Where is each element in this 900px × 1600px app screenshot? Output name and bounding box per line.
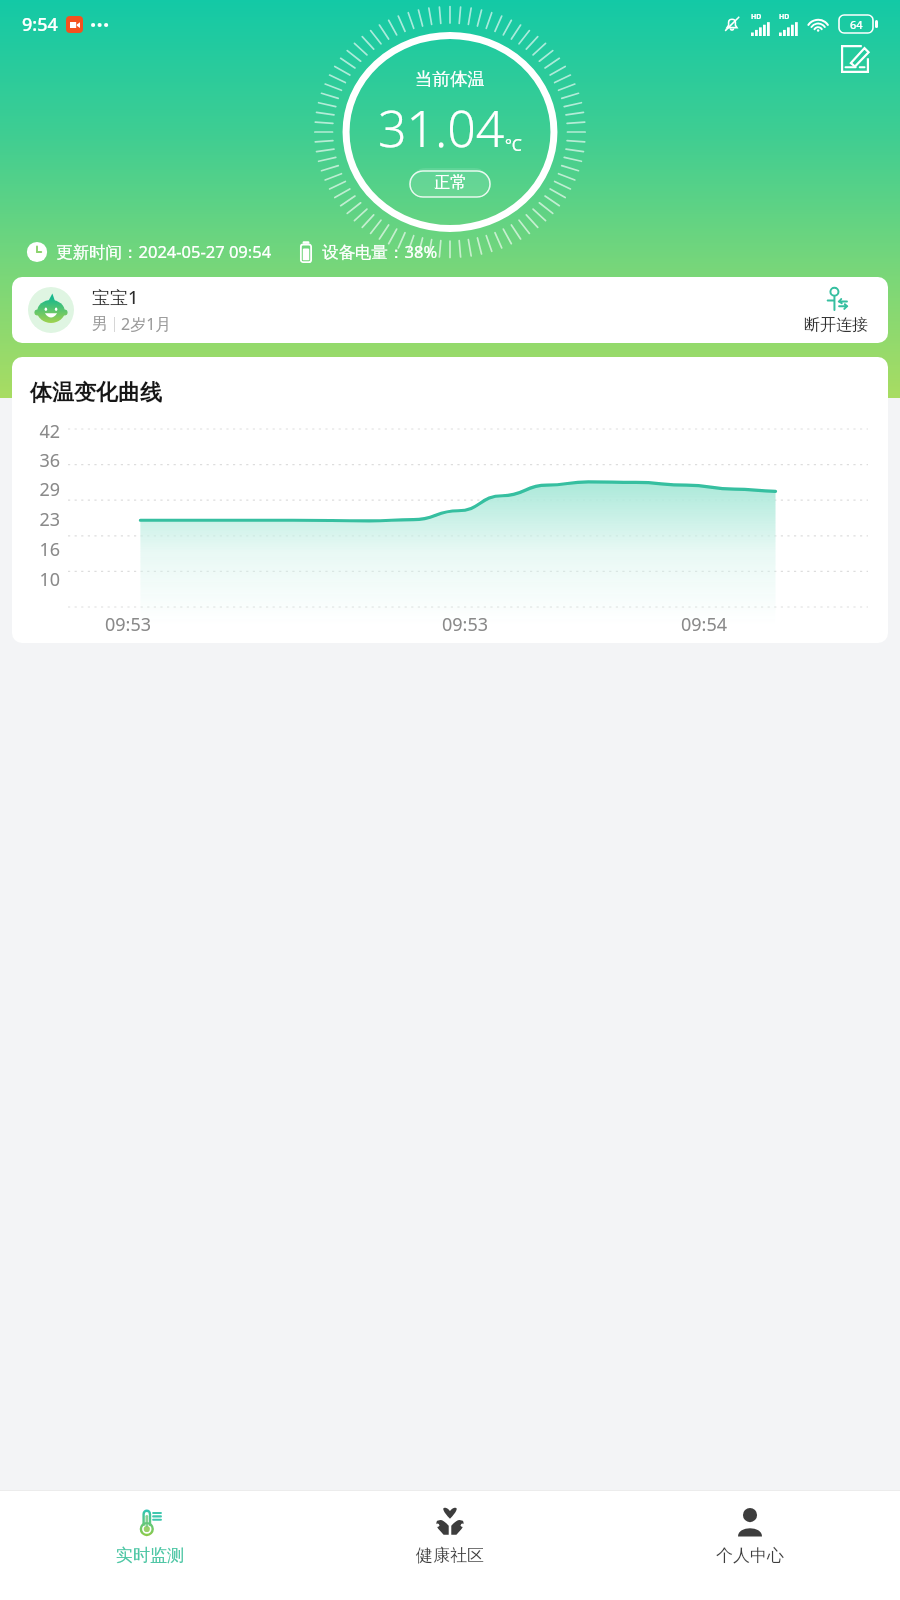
staticText: 当前体温 — [415, 68, 485, 90]
staticText: 9:54 — [22, 12, 58, 37]
button[interactable]: 宝宝1 — [12, 277, 888, 343]
button[interactable]: Edit device — [832, 36, 878, 82]
button[interactable]: 实时监测 — [0, 1491, 300, 1566]
staticText: 23 — [12, 507, 60, 532]
staticText: 09:53 — [442, 612, 681, 637]
button[interactable]: 断开连接 — [800, 282, 872, 339]
staticText: 体温变化曲线 — [30, 379, 162, 407]
staticText: HD — [751, 12, 762, 22]
button[interactable]: 个人中心 — [600, 1491, 900, 1566]
staticText: 更新时间：2024-05-27 09:54 — [56, 240, 272, 263]
staticText: 设备电量：38% — [322, 240, 438, 263]
staticText: 42 — [12, 419, 60, 444]
staticText: 64 — [850, 17, 863, 32]
staticText: 09:53 — [105, 612, 442, 637]
staticText: 31.04 — [378, 94, 505, 162]
staticText: 2岁1月 — [121, 313, 172, 335]
staticText: 29 — [12, 477, 60, 502]
button[interactable]: 健康社区 — [300, 1491, 600, 1566]
staticText: 宝宝1 — [92, 285, 139, 310]
staticText: 断开连接 — [804, 315, 868, 335]
staticText: 实时监测 — [116, 1545, 184, 1566]
staticText: 09:54 — [681, 612, 868, 637]
staticText: 10 — [12, 567, 60, 592]
staticText: HD — [779, 12, 790, 22]
staticText: 正常 — [433, 172, 467, 193]
staticText: 健康社区 — [416, 1545, 484, 1566]
staticText: 个人中心 — [716, 1545, 784, 1566]
staticText: 16 — [12, 537, 60, 562]
staticText: °C — [505, 134, 522, 156]
staticText: 36 — [12, 448, 60, 473]
staticText: 男 — [92, 314, 108, 334]
